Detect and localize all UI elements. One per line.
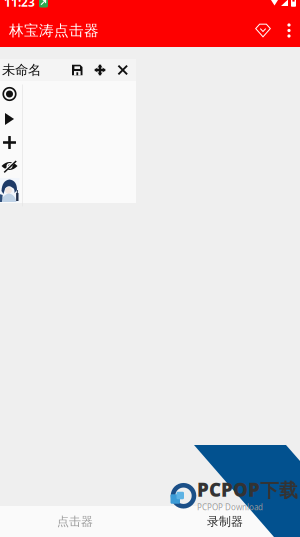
staticText: 点击器 xyxy=(57,514,93,529)
button[interactable]: Add xyxy=(0,131,22,154)
button[interactable]: Profile xyxy=(0,178,19,202)
staticText: PCPOP Download xyxy=(197,502,263,512)
button[interactable]: Hide xyxy=(0,154,22,178)
staticText: 未命名 xyxy=(2,62,41,78)
button[interactable]: Record xyxy=(0,81,22,107)
button[interactable]: 录制器 xyxy=(150,506,300,537)
button[interactable]: Save xyxy=(72,65,82,75)
staticText: 录制器 xyxy=(207,514,243,529)
button[interactable]: Close xyxy=(105,65,128,75)
button[interactable]: Move xyxy=(82,64,105,75)
button[interactable]: More options xyxy=(271,23,291,37)
button[interactable]: 点击器 xyxy=(0,506,150,537)
staticText: 11:23 xyxy=(4,0,35,10)
staticText: 林宝涛点击器 xyxy=(9,21,99,39)
button[interactable]: Play xyxy=(0,107,22,131)
staticText: PCPOP下载 xyxy=(197,477,298,502)
button[interactable]: VIP xyxy=(255,23,271,37)
